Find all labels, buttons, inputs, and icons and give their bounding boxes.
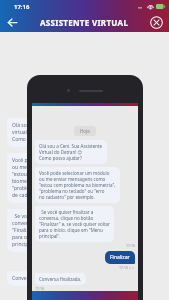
staticText: Olá sou a Ceni. Sua Assistente virtual d… xyxy=(12,122,83,143)
staticText: Você pode selecionar um módulo ou me env… xyxy=(39,170,116,200)
button[interactable]: Voltar xyxy=(0,13,24,32)
staticText: Finalizar xyxy=(110,254,130,261)
staticText: ASSISTENTE VIRTUAL xyxy=(40,17,129,28)
staticText: Conversa finalizada. xyxy=(39,276,82,282)
staticText: 17:16 ✓✓ xyxy=(119,265,135,270)
staticText: 17:16 xyxy=(35,286,44,291)
button[interactable]: Fechar xyxy=(144,13,169,32)
staticText: Se você quiser finalizar a conversa, cli… xyxy=(39,209,110,239)
staticText: Você pode selecionar um módulo ou me env… xyxy=(12,157,94,199)
staticText: Se você quiser finalizar a conversa, cli… xyxy=(12,213,91,248)
staticText: Conversa finalizada. xyxy=(12,275,60,282)
staticText: 17:16 xyxy=(14,3,30,11)
staticText: 17:16 xyxy=(126,243,135,248)
button[interactable]: Finalizar xyxy=(105,251,135,264)
staticText: Olá sou a Ceni. Sua Assistente Virtual d… xyxy=(39,143,103,161)
staticText: Hoje xyxy=(80,128,90,134)
